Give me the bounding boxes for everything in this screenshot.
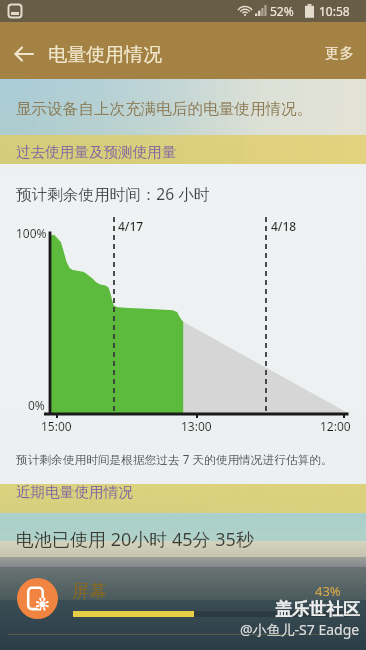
button[interactable]: 屏幕 [0, 568, 366, 634]
staticText: 4/17 [118, 218, 144, 234]
staticText: 过去使用量及预测使用量 [16, 143, 177, 161]
staticText: 15:00 [41, 418, 72, 434]
staticText: 4/18 [271, 218, 297, 234]
staticText: 10:58 [319, 3, 350, 19]
staticText: 显示设备自上次充满电后的电量使用情况。 [16, 99, 313, 119]
staticText: 预计剩余使用时间：26 小时 [16, 183, 210, 204]
button[interactable]: Back [2, 32, 46, 76]
staticText: 52% [270, 3, 294, 19]
staticText: 电量使用情况 [48, 43, 162, 67]
button[interactable]: 更多 [325, 44, 354, 62]
staticText: 13:00 [181, 418, 212, 434]
staticText: 预计剩余使用时间是根据您过去 7 天的使用情况进行估算的。 [16, 451, 333, 467]
staticText: 近期电量使用情况 [16, 483, 133, 501]
staticText: @小鱼儿-S7 Eadge [240, 620, 360, 639]
staticText: 电池已使用 20小时 45分 35秒 [16, 527, 254, 552]
staticText: 屏幕 [72, 580, 107, 602]
staticText: 12:00 [320, 418, 351, 434]
staticText: 43% [315, 582, 341, 600]
staticText: 100% [16, 225, 47, 241]
staticText: 0% [28, 397, 45, 413]
staticText: 盖乐世社区 [275, 599, 360, 620]
staticText: 更多 [325, 44, 354, 62]
